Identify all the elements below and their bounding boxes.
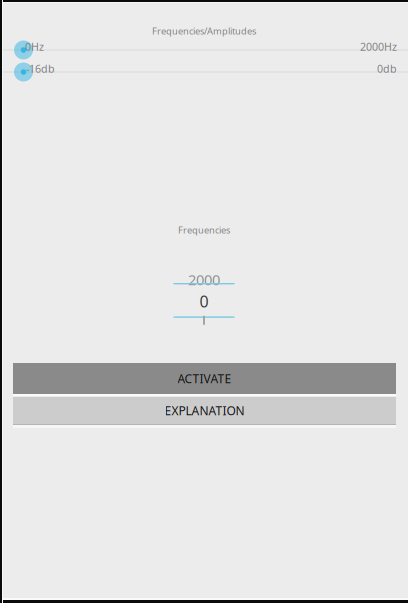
staticText: Frequencies/Amplitudes [152, 25, 256, 37]
button[interactable]: ACTIVATE [13, 363, 396, 396]
button[interactable]: EXPLANATION [13, 397, 396, 428]
staticText: -16db [26, 61, 55, 76]
staticText: Frequencies [178, 224, 230, 236]
staticText: 2000Hz [360, 39, 397, 54]
staticText: 0Hz [25, 39, 44, 54]
staticText: EXPLANATION [164, 402, 244, 418]
staticText: 0 [199, 291, 208, 312]
staticText: ACTIVATE [177, 370, 231, 386]
staticText: 2000 [188, 270, 220, 289]
staticText: 0db [377, 61, 397, 76]
